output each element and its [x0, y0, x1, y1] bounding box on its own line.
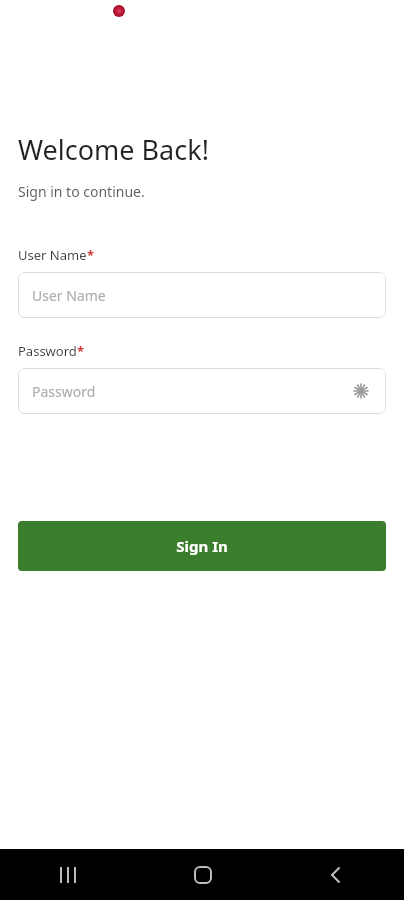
button[interactable]: Sign In	[18, 521, 386, 571]
staticText: Welcome Back!	[18, 131, 209, 168]
staticText: User Name	[18, 246, 87, 264]
staticText: Sign in to continue.	[18, 182, 145, 201]
staticText: Password	[32, 382, 96, 401]
staticText: *	[87, 246, 95, 264]
button[interactable]: Toggle password visibility	[350, 380, 372, 402]
button[interactable]: Back	[270, 849, 404, 900]
staticText: Password	[18, 342, 77, 360]
staticText: User Name	[32, 286, 106, 305]
button[interactable]: User Name	[18, 272, 386, 318]
button[interactable]: Password	[18, 368, 386, 414]
button[interactable]: Recent apps	[0, 849, 135, 900]
staticText: *	[77, 342, 85, 360]
staticText: Sign In	[176, 536, 228, 556]
button[interactable]: Home	[135, 849, 270, 900]
